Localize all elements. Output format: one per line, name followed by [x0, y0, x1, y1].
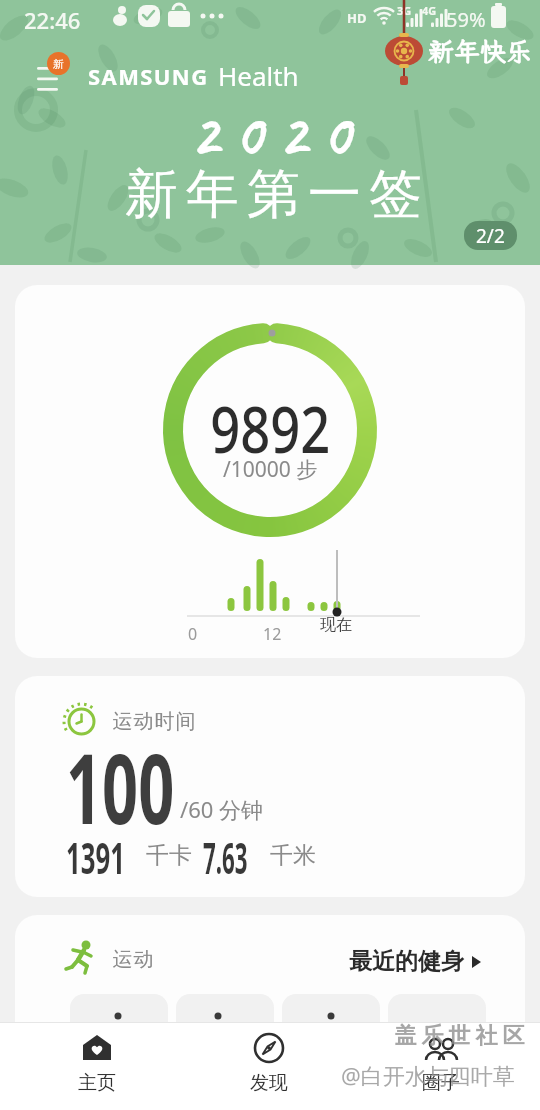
staticText: 22:46: [24, 5, 81, 35]
staticText: Health: [218, 58, 299, 93]
staticText: 100: [66, 720, 174, 852]
staticText: @白开水与四叶草: [341, 1060, 515, 1090]
staticText: 3G: [397, 3, 412, 18]
staticText: 千卡: [146, 841, 192, 870]
staticText: 运动时间: [112, 709, 196, 734]
staticText: 2/2: [476, 223, 505, 249]
staticText: 现在: [320, 615, 352, 635]
staticText: 4G: [422, 3, 437, 18]
staticText: 2020: [191, 96, 367, 172]
staticText: 0: [188, 623, 198, 645]
staticText: 59%: [446, 6, 486, 33]
staticText: 千米: [270, 841, 316, 870]
staticText: 新: [53, 57, 64, 71]
button[interactable]: 主页: [42, 1022, 152, 1110]
button[interactable]: 圈子: [386, 1022, 496, 1110]
staticText: SAMSUNG: [88, 61, 209, 91]
button[interactable]: 2/2: [464, 221, 517, 250]
staticText: 7.63: [203, 828, 248, 887]
staticText: 12: [263, 623, 282, 645]
staticText: 新年第一签: [121, 161, 426, 228]
staticText: /60 分钟: [180, 794, 264, 824]
staticText: 9892: [210, 385, 331, 472]
staticText: 主页: [78, 1071, 116, 1095]
button[interactable]: 发现: [214, 1022, 324, 1110]
staticText: HD: [347, 9, 367, 27]
staticText: 新年快乐: [428, 34, 533, 68]
button[interactable]: 运动时间: [15, 676, 525, 897]
staticText: /10000 步: [223, 455, 318, 484]
button[interactable]: 新: [33, 58, 75, 94]
button[interactable]: 最近的健身: [349, 947, 482, 976]
button[interactable]: 运动: [15, 915, 525, 1075]
staticText: 最近的健身: [349, 947, 464, 976]
staticText: 发现: [250, 1071, 288, 1095]
staticText: 圈子: [422, 1071, 460, 1095]
staticText: 盖乐世社区: [392, 1022, 527, 1050]
staticText: 1391: [66, 828, 125, 887]
staticText: 运动: [112, 947, 154, 972]
button[interactable]: 9892: [15, 285, 525, 658]
